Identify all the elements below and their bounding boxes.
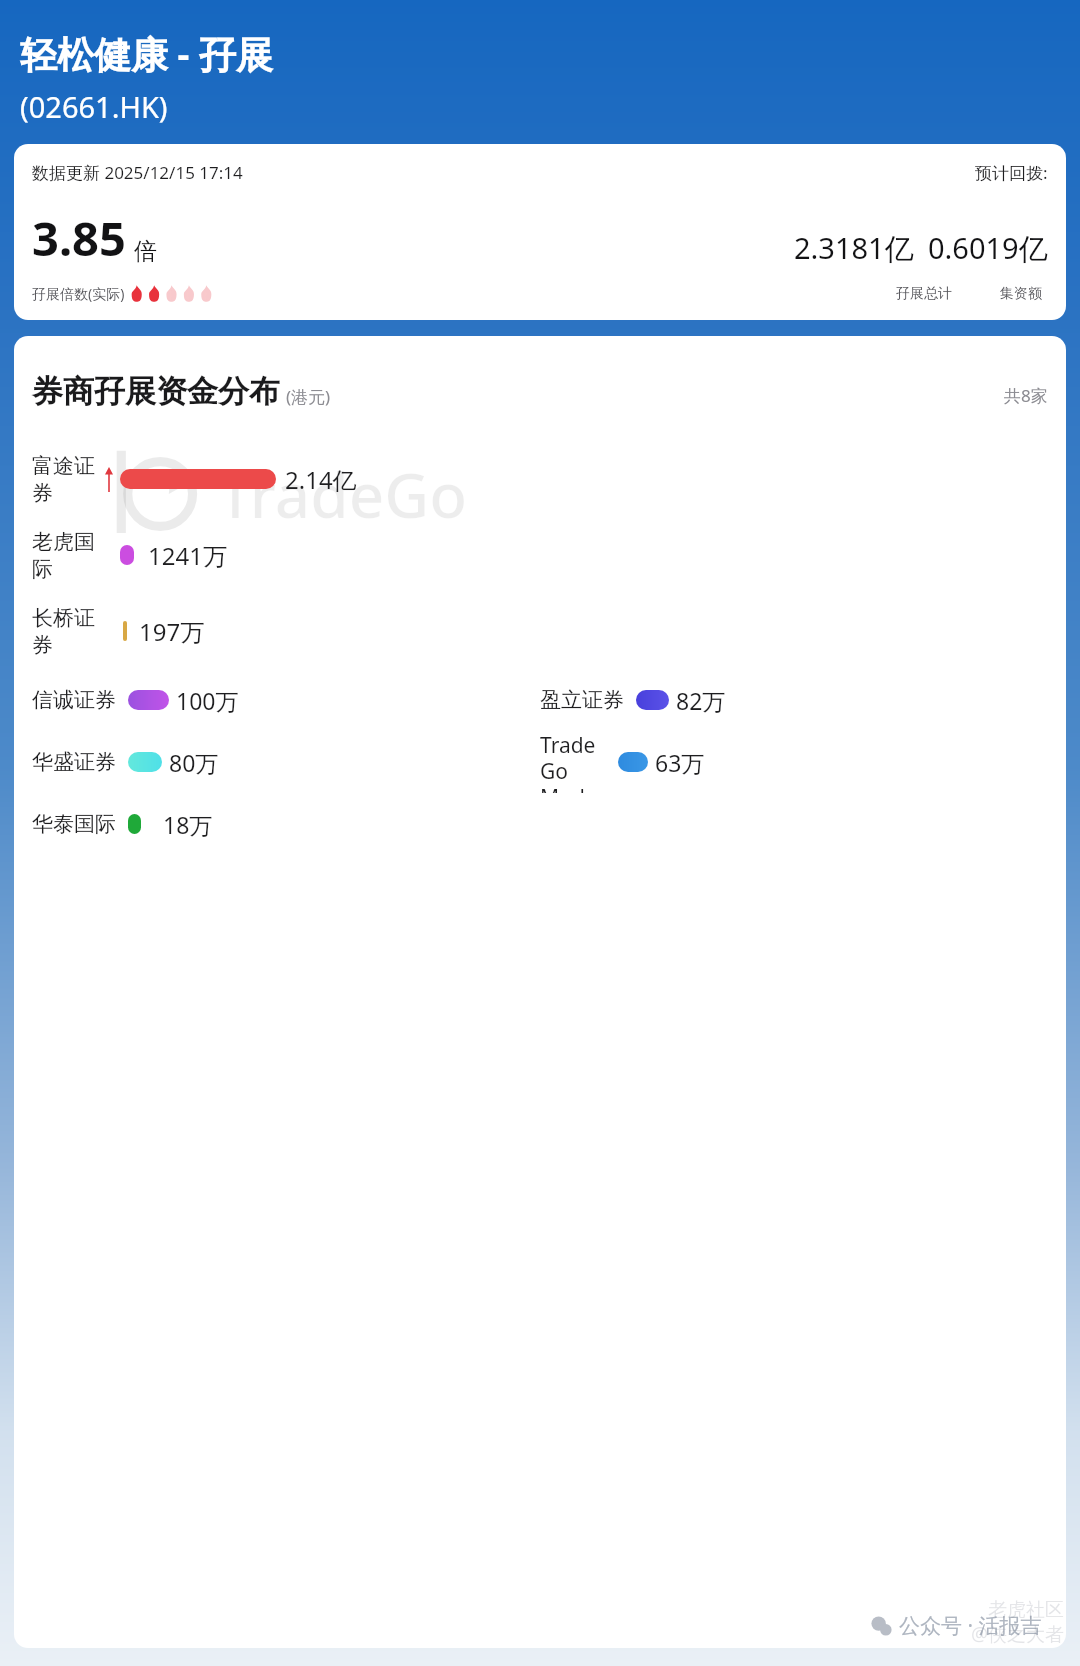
staticText: 80万 [169,747,219,778]
button[interactable]: TradeGo Markets [540,731,1048,793]
staticText: 18万 [163,809,213,840]
staticText: 1241万 [148,539,227,572]
button[interactable]: 信诚证券 [32,669,540,731]
staticText: 2.3181亿 [794,228,914,268]
staticText: 197万 [139,615,205,648]
staticText: 3.85 [32,206,126,270]
staticText: 富途证 券 [32,453,95,506]
staticText: 0.6019亿 [928,228,1048,268]
staticText: 数据更新 2025/12/15 17:14 [32,161,243,184]
staticText: TradeGo [218,452,468,536]
staticText: 盈立证券 [540,687,624,713]
staticText: (港元) [286,385,331,408]
staticText: 82万 [676,685,726,716]
button[interactable]: 老虎国 际 [32,517,1048,593]
staticText: 2.14亿 [285,463,357,496]
staticText: 集资额 [1000,285,1042,303]
staticText: 长桥证 券 [32,605,95,658]
staticText: 孖展总计 [896,285,952,303]
staticText: 老虎社区 @侠之大者 [970,1598,1064,1646]
staticText: 轻松健康 - 孖展 [20,28,274,79]
staticText: 100万 [176,685,239,716]
staticText: TradeGo Markets [540,731,610,793]
staticText: (02661.HK) [20,87,168,126]
button[interactable]: 富途证 券 [32,441,1048,517]
staticText: 华泰国际 [32,811,116,837]
staticText: 券商孖展资金分布 [32,372,280,411]
staticText: 倍 [134,237,157,266]
staticText: 63万 [655,747,705,778]
button[interactable]: 盈立证券 [540,669,1048,731]
staticText: 孖展倍数(实际) [32,284,125,303]
staticText: 老虎国 际 [32,529,95,582]
staticText: 共8家 [1004,384,1048,407]
button[interactable]: 数据更新 2025/12/15 17:14 [14,144,1066,320]
button[interactable]: 长桥证 券 [32,593,1048,669]
button[interactable]: 华泰国际 [32,793,1048,855]
button[interactable]: 华盛证券 [32,731,540,793]
staticText: 预计回拨: [975,161,1048,184]
staticText: 信诚证券 [32,687,116,713]
staticText: 华盛证券 [32,749,116,775]
staticText: 公众号 · 活报吉 [899,1611,1042,1640]
